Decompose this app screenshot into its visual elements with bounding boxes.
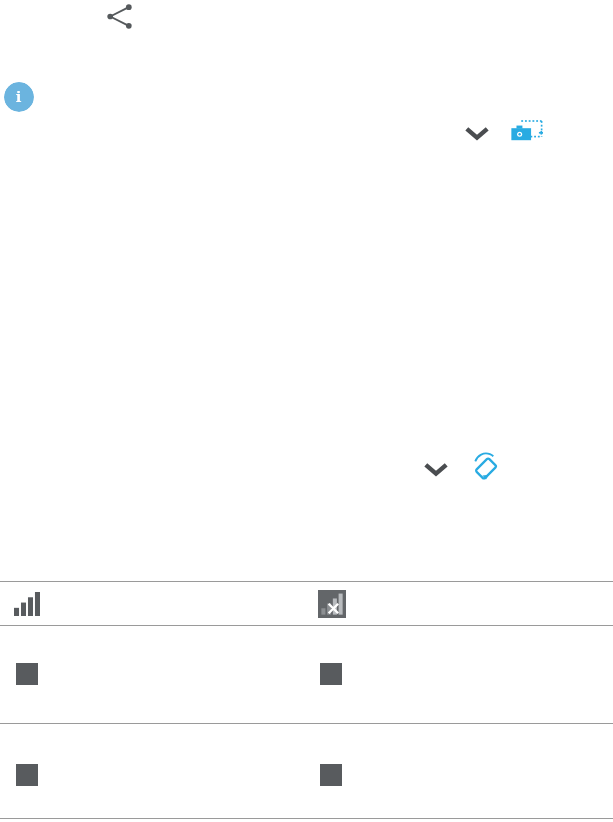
button[interactable]: Information [4, 82, 34, 112]
button[interactable]: Signal strength [14, 592, 40, 616]
button[interactable]: Auto rotate screen [471, 452, 501, 482]
staticText: i [16, 86, 22, 106]
button[interactable]: Expand [462, 120, 492, 146]
button[interactable]: No mobile service [318, 590, 346, 618]
button[interactable]: Screenshot capture [510, 118, 544, 148]
button[interactable]: Share [106, 3, 133, 30]
button[interactable]: Expand [421, 456, 451, 482]
